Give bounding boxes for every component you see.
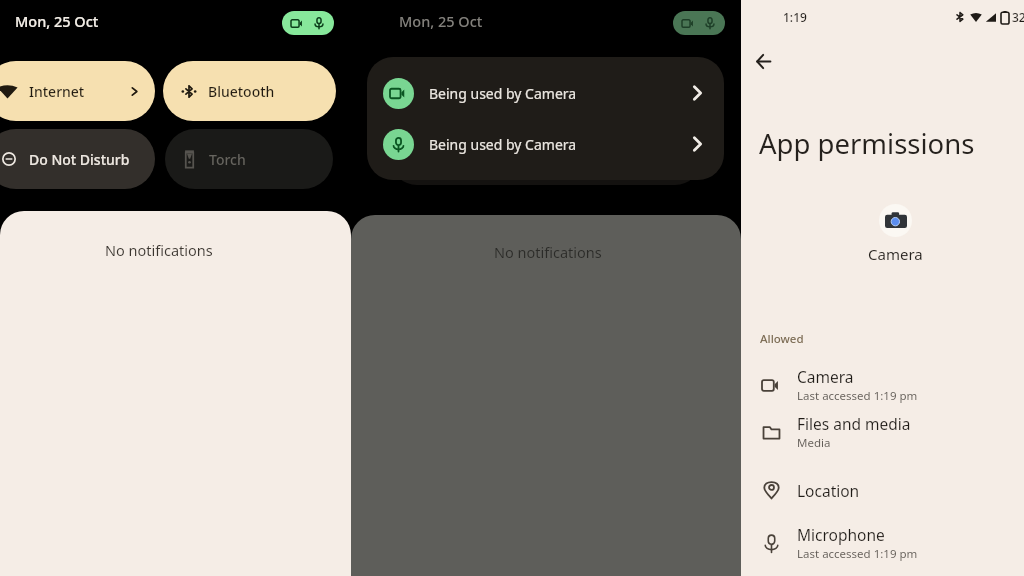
staticText: Last accessed 1:19 pm (797, 388, 918, 404)
staticText: Camera (868, 244, 923, 264)
staticText: 1:19 (783, 9, 807, 25)
staticText: No notifications (494, 242, 602, 262)
staticText: Do Not Disturb (29, 150, 130, 169)
button[interactable]: Location (741, 471, 1024, 509)
staticText: Torch (209, 150, 246, 169)
button[interactable]: Camera (741, 362, 1024, 408)
staticText: No notifications (105, 240, 213, 260)
staticText: Files and media (797, 413, 911, 434)
staticText: Location (797, 480, 860, 501)
button[interactable]: Camera and microphone in use (282, 11, 334, 35)
staticText: Allowed (760, 331, 804, 347)
staticText: Media (797, 435, 831, 451)
staticText: Last accessed 1:19 pm (797, 546, 918, 562)
staticText: Bluetooth (208, 82, 275, 101)
staticText: Camera (797, 366, 854, 387)
button[interactable]: Torch (165, 129, 333, 189)
staticText: Internet (29, 82, 85, 101)
staticText: Being used by Camera (429, 135, 577, 154)
button[interactable]: Being used by Camera (367, 68, 724, 118)
button[interactable]: Internet (0, 61, 155, 121)
staticText: App permissions (759, 125, 975, 162)
button[interactable]: Bluetooth (163, 61, 336, 121)
button[interactable]: Do Not Disturb (0, 129, 155, 189)
staticText: 32% (1012, 9, 1024, 25)
staticText: Mon, 25 Oct (399, 11, 483, 31)
button[interactable]: Microphone (741, 520, 1024, 566)
staticText: Being used by Camera (429, 84, 577, 103)
staticText: Microphone (797, 524, 885, 545)
staticText: Mon, 25 Oct (15, 11, 99, 31)
button[interactable]: Being used by Camera (367, 119, 724, 169)
button[interactable]: Files and media (741, 409, 1024, 455)
button[interactable]: Camera and microphone in use (673, 11, 725, 35)
button[interactable]: Back (750, 48, 776, 74)
